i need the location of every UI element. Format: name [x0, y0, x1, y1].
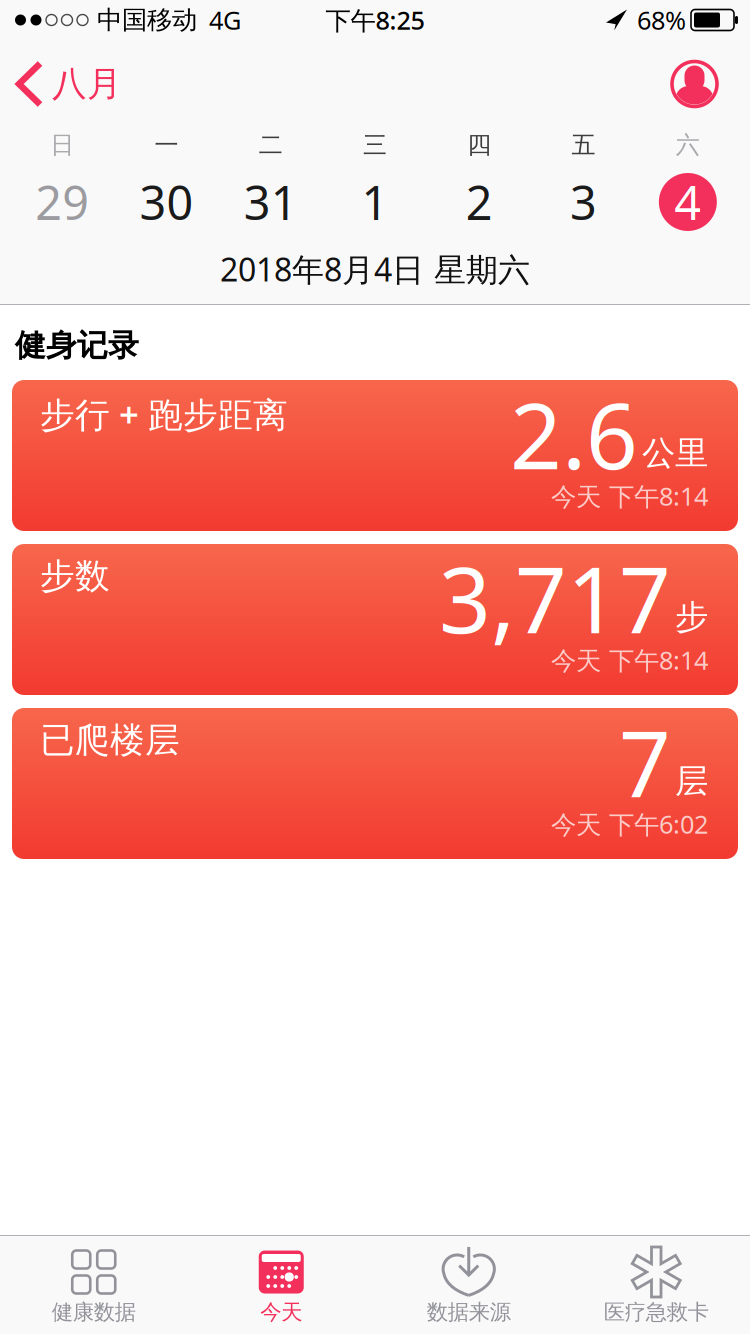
button[interactable]: 数据来源 [375, 1236, 562, 1325]
button[interactable]: 1 [323, 162, 427, 242]
staticText: 31 [244, 171, 298, 233]
staticText: 3 [570, 171, 597, 233]
staticText: 步行 + 跑步距离 [40, 391, 288, 437]
button[interactable]: 2 [427, 162, 531, 242]
staticText: 3,717 [439, 538, 671, 658]
staticText: 五 [572, 130, 596, 160]
staticText: 八月 [52, 63, 122, 105]
staticText: 医疗急救卡 [604, 1299, 709, 1325]
staticText: 2.6 [510, 374, 638, 494]
staticText: 今天 下午6:02 [551, 807, 708, 841]
staticText: 29 [35, 171, 89, 233]
staticText: 今天 下午8:14 [551, 479, 708, 513]
staticText: 4 [674, 171, 701, 233]
staticText: 一 [154, 130, 178, 160]
staticText: 二 [259, 130, 283, 160]
staticText: 公里 [642, 433, 708, 473]
staticText: 今天 [260, 1299, 302, 1325]
staticText: 2 [466, 171, 493, 233]
button[interactable]: 今天 [187, 1236, 375, 1325]
button[interactable]: 八月 [0, 63, 122, 105]
staticText: 30 [139, 171, 193, 233]
staticText: 1 [361, 171, 388, 233]
staticText: 三 [363, 130, 387, 160]
staticText: 4G [209, 3, 241, 37]
button[interactable]: 医疗急救卡 [562, 1236, 750, 1325]
button[interactable]: 3 [531, 162, 636, 242]
button[interactable]: 步数 [12, 544, 738, 695]
staticText: 数据来源 [427, 1299, 511, 1325]
button[interactable]: 步行 + 跑步距离 [12, 380, 738, 531]
staticText: 今天 下午8:14 [551, 643, 708, 677]
staticText: 2018年8月4日 星期六 [220, 248, 530, 290]
button[interactable]: 31 [219, 162, 323, 242]
staticText: 层 [675, 761, 708, 801]
button[interactable]: 29 [10, 162, 114, 242]
staticText: 步 [675, 597, 708, 637]
staticText: 已爬楼层 [40, 719, 180, 762]
button[interactable]: 健康数据 [0, 1236, 187, 1325]
staticText: 7 [619, 702, 671, 822]
staticText: 步数 [40, 555, 110, 598]
button[interactable]: 个人资料 [671, 60, 750, 107]
staticText: 日 [50, 130, 74, 160]
button[interactable]: 4 [636, 162, 740, 242]
staticText: 68% [637, 3, 686, 37]
staticText: 四 [467, 130, 491, 160]
staticText: 下午8:25 [325, 3, 424, 37]
staticText: 健身记录 [15, 327, 139, 364]
button[interactable]: 30 [114, 162, 219, 242]
staticText: 中国移动 [97, 4, 197, 35]
staticText: 健康数据 [52, 1299, 136, 1325]
button[interactable]: 已爬楼层 [12, 708, 738, 859]
staticText: 六 [676, 130, 700, 160]
